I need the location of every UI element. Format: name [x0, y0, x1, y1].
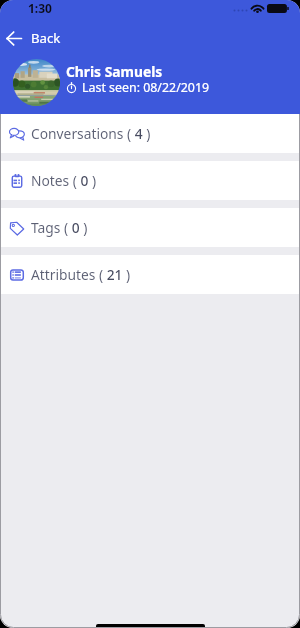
other: Back [6, 31, 22, 46]
staticText: Back [31, 29, 61, 47]
staticText: Chris Samuels [66, 62, 163, 81]
staticText: Notes ( 0 ) [31, 171, 97, 190]
button[interactable]: Conversations ( 4 ) [0, 114, 300, 153]
staticText: Conversations ( 4 ) [31, 124, 151, 143]
staticText: Attributes ( 21 ) [31, 265, 131, 284]
staticText: 1:30 [28, 0, 52, 16]
button[interactable]: Tags ( 0 ) [0, 208, 300, 247]
staticText: Last seen: 08/22/2019 [82, 79, 210, 96]
button[interactable]: Notes ( 0 ) [0, 161, 300, 200]
button[interactable]: Attributes ( 21 ) [0, 255, 300, 294]
staticText: Tags ( 0 ) [31, 218, 88, 237]
button[interactable]: Back [0, 26, 71, 50]
